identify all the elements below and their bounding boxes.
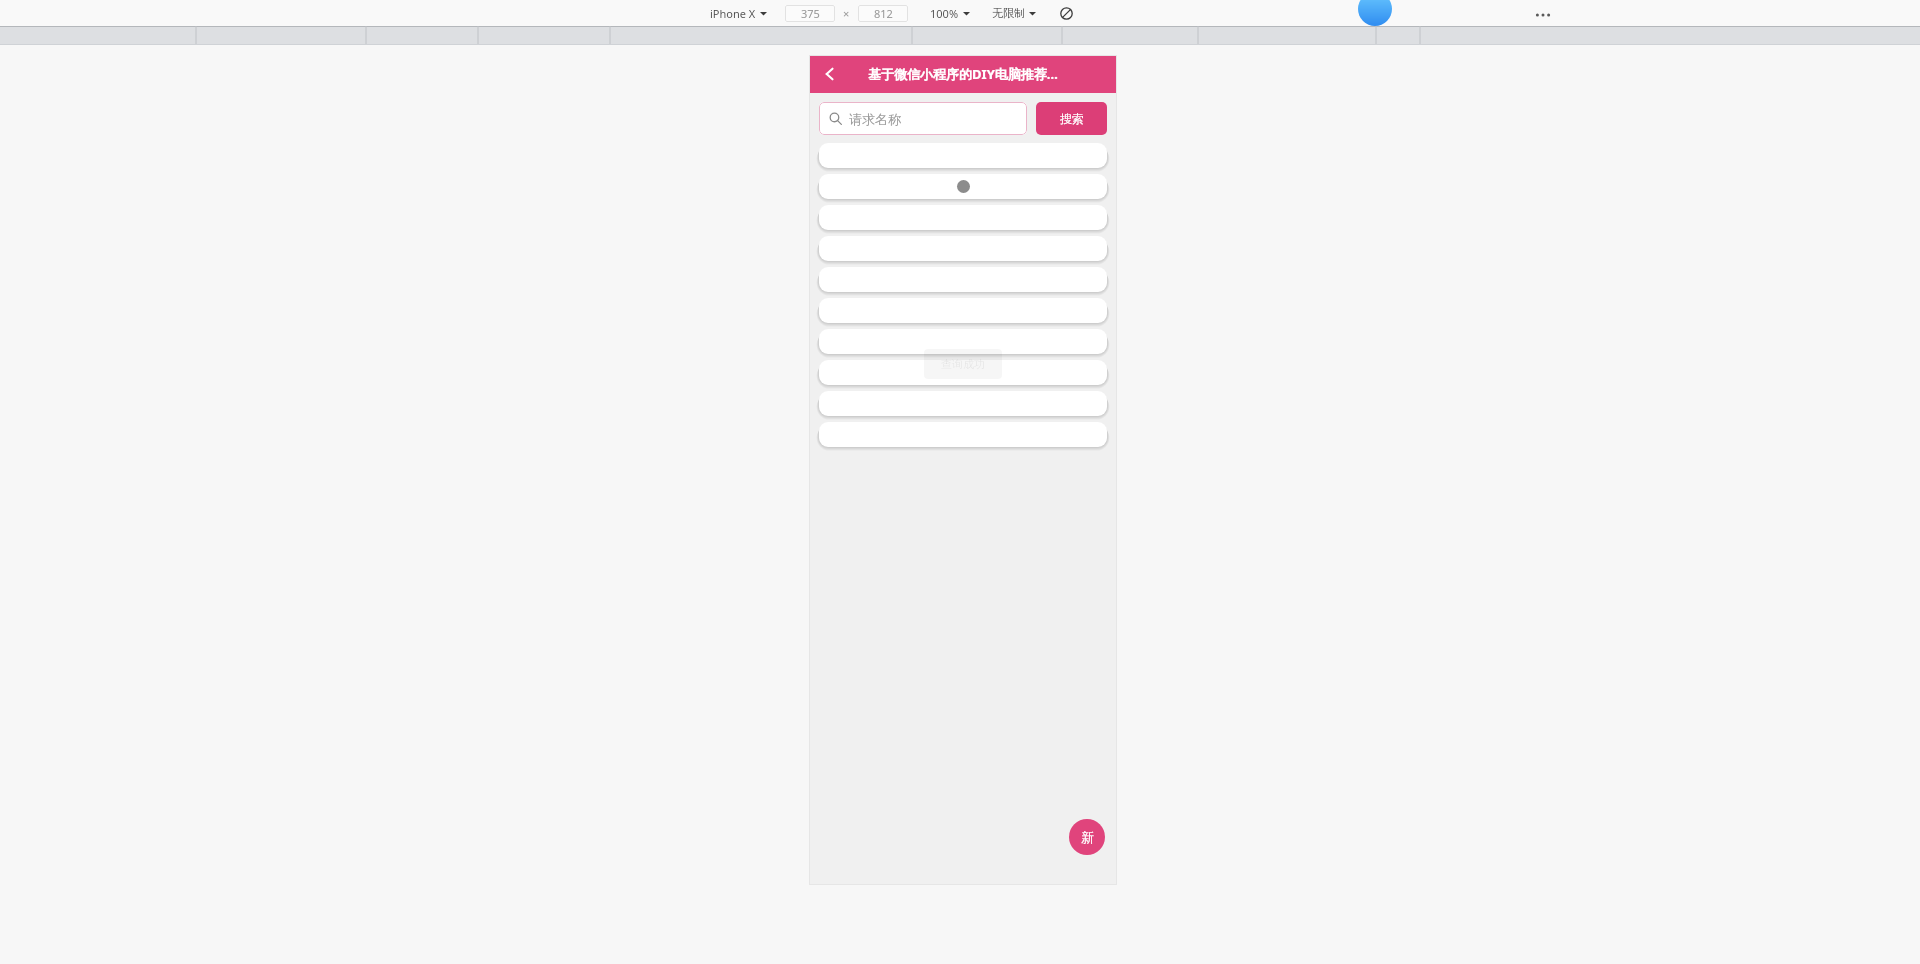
- button[interactable]: iPhone X: [708, 5, 769, 22]
- button[interactable]: [819, 174, 1107, 199]
- button[interactable]: 375: [785, 5, 835, 22]
- staticText: 查询成功: [941, 357, 985, 371]
- staticText: iPhone X: [710, 6, 756, 21]
- button[interactable]: Back: [815, 59, 845, 89]
- button[interactable]: [819, 360, 1107, 385]
- button[interactable]: More options: [1530, 2, 1556, 28]
- button[interactable]: 搜索: [1036, 102, 1107, 135]
- button[interactable]: Account avatar: [1358, 0, 1392, 26]
- staticText: 基于微信小程序的DIY电脑推荐…: [868, 65, 1058, 83]
- staticText: 100%: [930, 6, 959, 21]
- staticText: ×: [843, 6, 850, 21]
- button[interactable]: 812: [858, 5, 908, 22]
- button[interactable]: 请求名称: [819, 102, 1027, 135]
- staticText: 无限制: [992, 6, 1025, 20]
- staticText: 812: [874, 6, 893, 21]
- button[interactable]: 新: [1069, 819, 1105, 855]
- staticText: 搜索: [1060, 111, 1084, 126]
- button[interactable]: 100%: [928, 5, 972, 22]
- button[interactable]: [819, 329, 1107, 354]
- staticText: 新: [1081, 829, 1094, 845]
- staticText: 375: [801, 6, 820, 21]
- button[interactable]: 无限制: [990, 5, 1038, 21]
- button[interactable]: Throttling disabled: [1056, 3, 1076, 23]
- staticText: 请求名称: [849, 111, 901, 127]
